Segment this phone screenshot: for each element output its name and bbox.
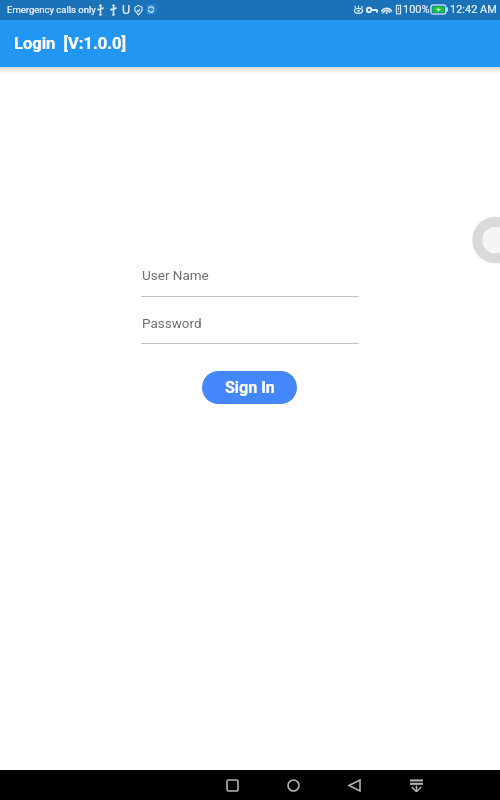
button[interactable]: Recent apps: [219, 772, 245, 798]
staticText: Emergency calls only: [7, 4, 96, 15]
staticText: U: [122, 2, 131, 17]
staticText: Login [V:1.0.0]: [14, 34, 127, 53]
staticText: 12:42 AM: [450, 3, 497, 16]
staticText: Sign In: [225, 378, 275, 397]
button[interactable]: Home: [280, 772, 306, 798]
button[interactable]: User Name: [141, 259, 359, 298]
staticText: User Name: [142, 267, 209, 283]
staticText: 100%: [403, 3, 430, 16]
button[interactable]: Sign In: [202, 371, 297, 404]
button[interactable]: Hide keyboard: [403, 772, 429, 798]
staticText: Password: [142, 315, 202, 331]
button[interactable]: Back: [341, 772, 367, 798]
button[interactable]: Password: [141, 307, 359, 345]
